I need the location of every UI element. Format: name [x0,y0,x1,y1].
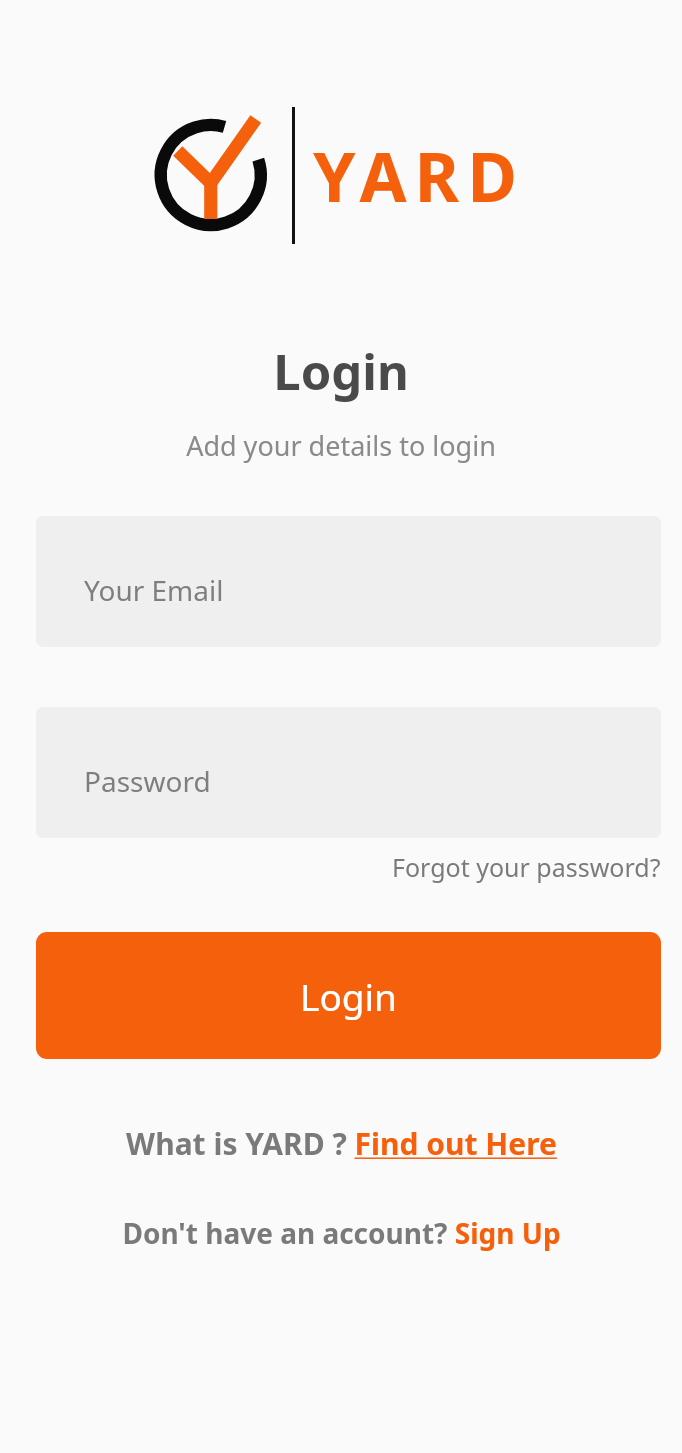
button[interactable]: Password [36,707,661,838]
button[interactable]: Login [36,932,661,1059]
other: YARD logo [157,100,282,250]
button[interactable]: Forgot your password? [392,850,661,884]
staticText: What is YARD ? Find out Here [126,1123,557,1164]
button[interactable]: Your Email [36,516,661,647]
staticText: Your Email [84,571,224,609]
staticText: Forgot your password? [392,850,661,884]
staticText: Login [300,971,397,1021]
staticText: Don't have an account? Sign Up [122,1214,561,1252]
button[interactable]: What is YARD ? Find out Here [120,1119,563,1168]
button[interactable]: Don't have an account? Sign Up [116,1210,567,1256]
staticText: Add your details to login [186,427,496,464]
staticText: Login [273,338,409,405]
staticText: Password [84,762,211,800]
staticText: YARD [313,129,525,222]
